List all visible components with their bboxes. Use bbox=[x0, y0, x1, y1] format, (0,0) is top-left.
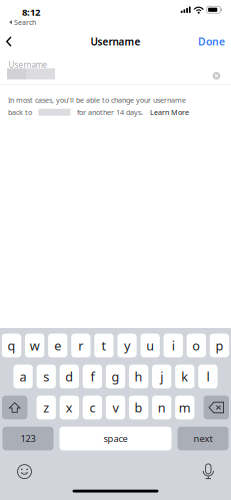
staticText: for another 14 days. bbox=[77, 107, 143, 117]
staticText: x bbox=[66, 399, 73, 416]
button[interactable]: w bbox=[25, 334, 44, 357]
button[interactable]: u bbox=[140, 334, 160, 357]
staticText: Username bbox=[90, 35, 140, 48]
button[interactable]: 123 bbox=[2, 427, 53, 450]
staticText: r bbox=[78, 337, 83, 354]
button[interactable]: k bbox=[175, 365, 194, 388]
staticText: h bbox=[135, 368, 143, 385]
staticText: Learn More bbox=[150, 107, 189, 117]
staticText: 8:12 bbox=[22, 5, 40, 19]
staticText: s bbox=[43, 368, 49, 385]
button[interactable]: e bbox=[48, 334, 67, 357]
staticText: v bbox=[112, 399, 118, 416]
button[interactable]: z bbox=[37, 396, 56, 419]
button[interactable]: c bbox=[83, 396, 102, 419]
button[interactable]: d bbox=[60, 365, 79, 388]
button[interactable]: g bbox=[106, 365, 125, 388]
button[interactable]: Emoji keyboard bbox=[13, 460, 36, 483]
button[interactable]: s bbox=[37, 365, 56, 388]
staticText: u bbox=[146, 337, 154, 354]
button[interactable]: b bbox=[129, 396, 148, 419]
staticText: 123 bbox=[20, 432, 35, 445]
staticText: Search bbox=[14, 17, 36, 27]
button[interactable]: m bbox=[175, 396, 194, 419]
staticText: Username bbox=[8, 59, 47, 70]
staticText: z bbox=[43, 399, 49, 416]
button[interactable]: t bbox=[94, 334, 114, 357]
staticText: n bbox=[158, 399, 166, 416]
button[interactable]: j bbox=[152, 365, 171, 388]
staticText: Done bbox=[198, 34, 225, 49]
button[interactable]: x bbox=[60, 396, 79, 419]
button[interactable]: Done bbox=[198, 29, 231, 53]
button[interactable]: y bbox=[117, 334, 137, 357]
staticText: o bbox=[192, 337, 200, 354]
button[interactable]: o bbox=[187, 334, 206, 357]
button[interactable]: p bbox=[210, 334, 229, 357]
button[interactable]: Delete bbox=[204, 396, 229, 419]
staticText: a bbox=[20, 368, 27, 385]
staticText: k bbox=[181, 368, 188, 385]
staticText: back to bbox=[8, 107, 32, 117]
button[interactable]: Dictation bbox=[199, 460, 218, 484]
staticText: l bbox=[206, 368, 209, 385]
staticText: t bbox=[101, 337, 106, 354]
staticText: next bbox=[193, 432, 212, 445]
staticText: i bbox=[172, 337, 175, 354]
staticText: In most cases, you'll be able to change … bbox=[8, 95, 186, 105]
staticText: d bbox=[65, 368, 73, 385]
staticText: c bbox=[89, 399, 95, 416]
staticText: b bbox=[135, 399, 143, 416]
staticText: g bbox=[111, 368, 119, 385]
staticText: q bbox=[7, 337, 15, 354]
staticText: j bbox=[160, 368, 163, 385]
button[interactable]: i bbox=[164, 334, 183, 357]
staticText: y bbox=[124, 337, 130, 354]
button[interactable]: Shift bbox=[2, 396, 27, 419]
staticText: f bbox=[90, 368, 94, 385]
staticText: w bbox=[30, 337, 40, 354]
staticText: m bbox=[179, 399, 191, 416]
button[interactable]: a bbox=[13, 365, 33, 388]
button[interactable]: Learn More bbox=[143, 107, 189, 117]
button[interactable]: l bbox=[198, 365, 217, 388]
button[interactable]: q bbox=[2, 334, 21, 357]
button[interactable]: r bbox=[71, 334, 90, 357]
button[interactable]: Back bbox=[0, 29, 28, 53]
button[interactable]: next bbox=[177, 427, 228, 450]
staticText: e bbox=[54, 337, 61, 354]
staticText: space bbox=[103, 432, 127, 445]
button[interactable]: n bbox=[152, 396, 171, 419]
button[interactable]: f bbox=[83, 365, 102, 388]
staticText: p bbox=[215, 337, 223, 354]
button[interactable]: v bbox=[106, 396, 125, 419]
button[interactable]: h bbox=[129, 365, 148, 388]
button[interactable]: Clear text bbox=[207, 67, 225, 85]
button[interactable]: space bbox=[59, 427, 171, 450]
